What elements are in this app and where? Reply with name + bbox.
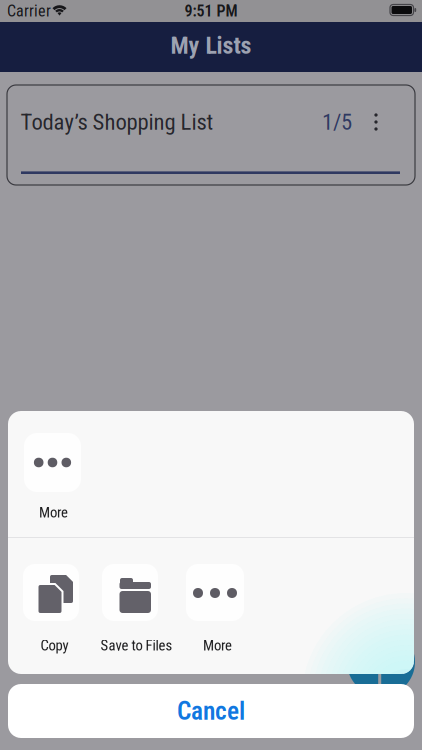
staticText: Carrier [7,2,51,20]
staticText: 1/5 [322,109,352,135]
button[interactable]: More [175,564,255,654]
staticText: Copy [40,637,68,654]
button[interactable]: Cancel [8,684,414,738]
button[interactable]: Copy [11,564,91,654]
staticText: More [39,504,68,521]
staticText: More [203,637,232,654]
button[interactable]: Save to Files [90,564,170,654]
staticText: My Lists [170,31,251,59]
button[interactable]: More [12,433,92,521]
button[interactable]: Today’s Shopping List [7,85,415,185]
staticText: 9:51 PM [184,2,237,20]
staticText: Today’s Shopping List [20,109,213,135]
staticText: Save to Files [100,637,172,654]
staticText: Cancel [177,696,245,726]
